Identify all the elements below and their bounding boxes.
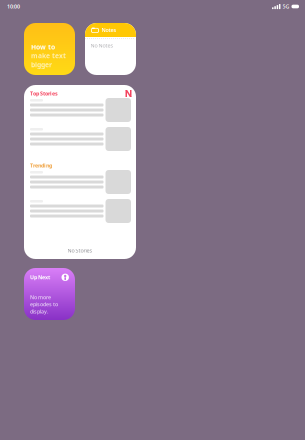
staticText: No more [30, 294, 51, 301]
staticText: 5G [282, 3, 289, 10]
staticText: Up Next [30, 274, 50, 281]
button[interactable]: Story [30, 127, 136, 151]
button[interactable]: Notes [85, 23, 136, 75]
staticText: Notes [101, 26, 116, 34]
staticText: Top Stories [30, 90, 58, 97]
staticText: display. [30, 308, 48, 315]
staticText: episodes to [30, 301, 58, 308]
button[interactable]: How to [24, 23, 75, 75]
staticText: Trending [30, 162, 52, 169]
staticText: No Stories [67, 247, 92, 254]
staticText: 10:00 [7, 3, 20, 10]
button[interactable]: Up Next [24, 268, 75, 320]
button[interactable]: Story [30, 170, 136, 194]
button[interactable]: Story [30, 98, 136, 122]
button[interactable]: Story [30, 199, 136, 223]
staticText: No Notes [90, 42, 113, 49]
staticText: bigger [31, 60, 52, 69]
staticText: make text [31, 51, 66, 60]
button[interactable]: Apple News [24, 85, 131, 97]
staticText: How to [31, 42, 55, 51]
button[interactable]: Top Stories [24, 85, 58, 97]
